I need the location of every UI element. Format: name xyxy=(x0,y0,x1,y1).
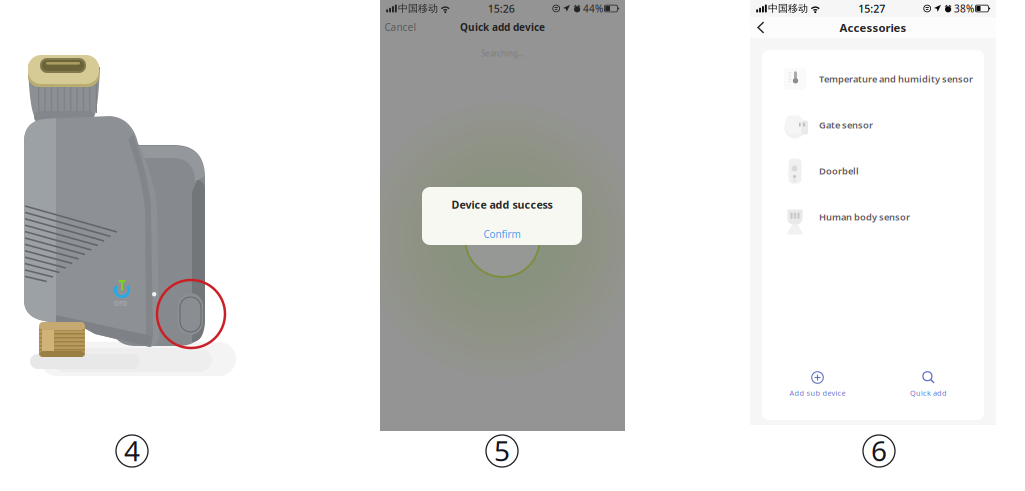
button[interactable]: Doorbell xyxy=(762,148,984,194)
button[interactable]: Temperature and humidity sensor xyxy=(762,56,984,102)
staticText: 44% xyxy=(583,2,603,15)
staticText: Accessories xyxy=(839,20,906,35)
staticText: Human body sensor xyxy=(819,211,910,223)
staticText: 中国移动 xyxy=(398,2,438,15)
staticText: Device add success xyxy=(451,197,552,212)
staticText: Temperature and humidity sensor xyxy=(819,73,973,85)
button[interactable]: Gate sensor xyxy=(762,102,984,148)
staticText: Add sub device xyxy=(789,388,845,398)
staticText: 4 xyxy=(124,431,140,469)
staticText: oro xyxy=(114,297,127,308)
button[interactable]: Add sub device xyxy=(762,367,873,402)
staticText: 15:27 xyxy=(858,1,885,16)
staticText: 6 xyxy=(871,431,887,469)
staticText: Cancel xyxy=(384,20,416,34)
staticText: Searching... xyxy=(481,48,524,59)
staticText: 中国移动 xyxy=(768,2,808,15)
staticText: Confirm xyxy=(483,227,520,241)
staticText: Quick add xyxy=(910,388,947,398)
staticText: 5 xyxy=(494,431,510,469)
button[interactable]: Back xyxy=(750,17,772,38)
staticText: Doorbell xyxy=(819,165,859,177)
button[interactable]: Confirm xyxy=(422,224,582,244)
staticText: Gate sensor xyxy=(819,119,873,131)
button[interactable]: Human body sensor xyxy=(762,194,984,240)
staticText: 15:26 xyxy=(488,1,515,16)
button[interactable]: Quick add xyxy=(873,367,984,402)
staticText: 38% xyxy=(954,2,974,15)
staticText: Quick add device xyxy=(460,20,545,34)
button[interactable]: Cancel xyxy=(380,17,421,37)
